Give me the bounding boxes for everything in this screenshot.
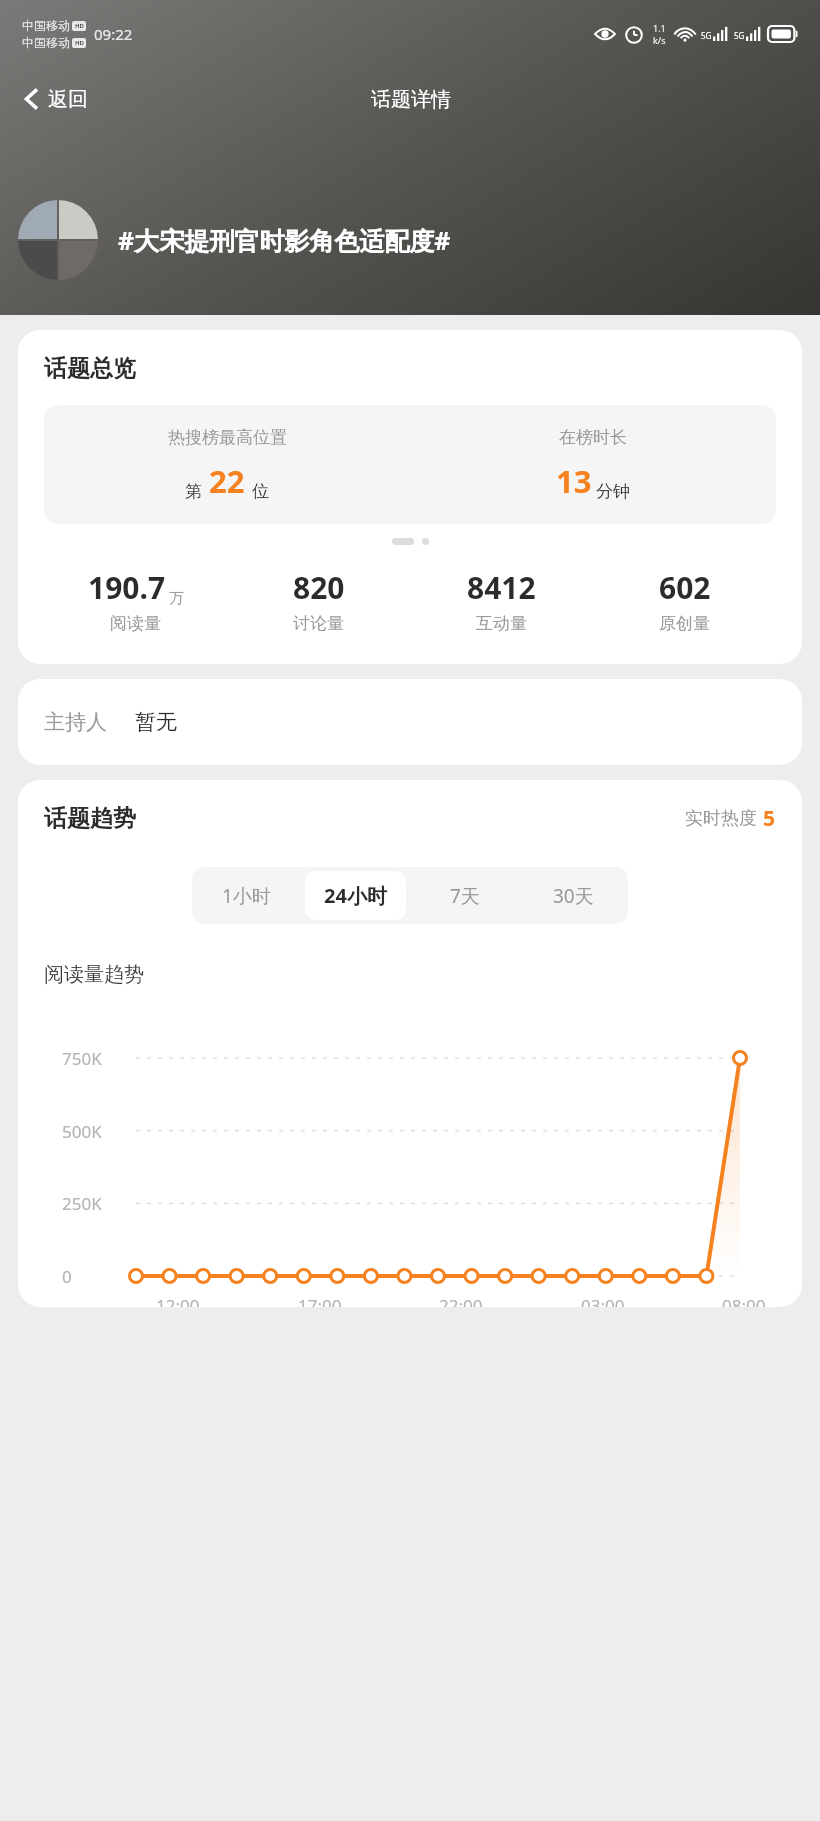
button[interactable]: 实时热度 xyxy=(685,804,776,833)
staticText: 中国移动 xyxy=(22,35,70,50)
staticText: HD xyxy=(75,22,84,30)
staticText: 12:00 xyxy=(156,1294,200,1307)
button[interactable]: 24小时 xyxy=(305,871,406,920)
staticText: 分钟 xyxy=(596,481,630,502)
staticText: 22 xyxy=(209,460,245,502)
staticText: 750K xyxy=(62,1047,102,1069)
staticText: 中国移动 xyxy=(22,18,70,33)
staticText: 500K xyxy=(62,1120,102,1142)
button[interactable]: 1小时 xyxy=(196,871,297,920)
button[interactable]: 话题封面 xyxy=(18,200,98,280)
staticText: HD xyxy=(75,39,84,47)
staticText: 讨论量 xyxy=(293,613,344,634)
staticText: 阅读量趋势 xyxy=(44,962,144,987)
staticText: k/s xyxy=(653,34,666,46)
staticText: 13 xyxy=(556,460,592,502)
button[interactable]: 30天 xyxy=(523,871,624,920)
staticText: 阅读量 xyxy=(110,613,161,634)
button[interactable]: 8412 xyxy=(410,567,593,634)
staticText: 820 xyxy=(293,567,345,608)
staticText: 5G xyxy=(701,30,712,41)
staticText: 主持人 xyxy=(44,709,107,735)
staticText: 5G xyxy=(734,30,745,41)
staticText: 03:00 xyxy=(581,1294,625,1307)
staticText: 08:00 xyxy=(722,1294,766,1307)
staticText: 热搜榜最高位置 xyxy=(168,427,287,448)
button[interactable]: 190.7 xyxy=(44,567,227,634)
staticText: #大宋提刑官时影角色适配度# xyxy=(118,223,451,257)
staticText: 话题趋势 xyxy=(44,804,136,833)
staticText: 602 xyxy=(659,567,711,608)
staticText: 22:00 xyxy=(439,1294,483,1307)
staticText: 位 xyxy=(252,481,269,502)
staticText: 09:22 xyxy=(94,24,133,44)
staticText: 话题总览 xyxy=(44,354,136,383)
staticText: 190.7 xyxy=(88,567,166,608)
staticText: 0 xyxy=(62,1265,72,1287)
staticText: 7天 xyxy=(450,883,480,909)
button[interactable]: 602 xyxy=(593,567,776,634)
staticText: 17:00 xyxy=(298,1294,342,1307)
staticText: 原创量 xyxy=(659,613,710,634)
button[interactable]: 主持人 xyxy=(18,679,802,765)
staticText: 互动量 xyxy=(476,613,527,634)
staticText: 1.1 xyxy=(653,22,666,34)
staticText: 30天 xyxy=(553,883,594,909)
staticText: 250K xyxy=(62,1192,102,1214)
staticText: 暂无 xyxy=(135,709,177,735)
staticText: 话题详情 xyxy=(371,87,451,112)
staticText: 实时热度 xyxy=(685,807,757,830)
staticText: 1小时 xyxy=(222,883,271,909)
button[interactable]: 返回 xyxy=(12,78,98,120)
staticText: 8412 xyxy=(467,567,536,608)
staticText: 第 xyxy=(185,481,202,502)
staticText: 返回 xyxy=(48,87,88,112)
button[interactable]: 热搜榜最高位置 xyxy=(44,405,776,524)
staticText: 在榜时长 xyxy=(559,427,627,448)
staticText: 24小时 xyxy=(324,882,387,909)
staticText: 5 xyxy=(763,804,776,833)
button[interactable]: 820 xyxy=(227,567,410,634)
staticText: 万 xyxy=(169,589,184,608)
button[interactable]: 7天 xyxy=(414,871,515,920)
